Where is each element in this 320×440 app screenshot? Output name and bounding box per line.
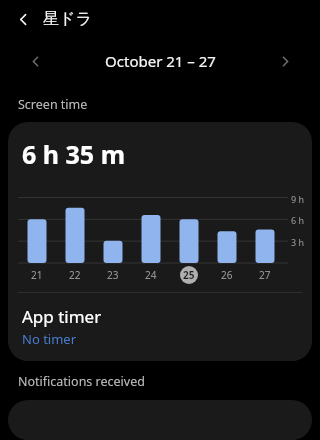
staticText: Notifications received [18,373,145,390]
staticText: 星ドラ [43,9,92,29]
button[interactable]: App timer [8,293,312,361]
staticText: App timer [22,305,102,328]
staticText: 6 h [291,214,305,226]
staticText: 27 [259,268,271,282]
staticText: 22 [69,268,81,282]
staticText: October 21 – 27 [105,51,216,71]
staticText: 21 [31,268,43,282]
staticText: 9 h [291,193,305,205]
staticText: 24 [145,268,157,282]
staticText: 23 [107,268,119,282]
staticText: 26 [221,268,233,282]
staticText: 6 h 35 m [22,137,126,171]
staticText: 3 h [291,236,305,248]
button[interactable]: Next week [271,47,299,75]
button[interactable] [8,400,312,440]
staticText: Screen time [18,96,88,113]
staticText: 25 [183,268,195,282]
button[interactable]: Previous week [21,47,49,75]
button[interactable]: Back [10,6,36,32]
staticText: No timer [22,330,77,348]
